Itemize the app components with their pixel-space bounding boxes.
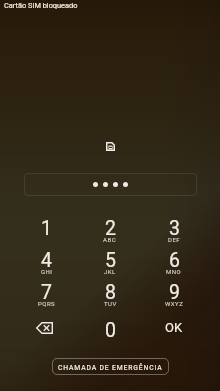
staticText: 5	[105, 249, 116, 272]
button[interactable]: CHAMADA DE EMERGÊNCIA	[52, 358, 169, 375]
staticText: GHI	[41, 268, 53, 275]
button[interactable]: 2	[78, 207, 142, 239]
staticText: 0	[105, 319, 116, 342]
button[interactable]: 4	[15, 239, 78, 271]
other: SIM card	[106, 142, 115, 151]
staticText: 4	[41, 249, 52, 272]
staticText: JKL	[104, 268, 116, 275]
button[interactable]: 8	[78, 271, 142, 303]
button[interactable]: 5	[78, 239, 142, 271]
staticText: MNO	[166, 268, 182, 275]
staticText: 1	[41, 217, 52, 240]
button[interactable]: 0	[78, 303, 142, 341]
button[interactable]: 7	[15, 271, 78, 303]
staticText: 2	[105, 217, 116, 240]
button[interactable]: 3	[142, 207, 206, 239]
button[interactable]: 1	[15, 207, 78, 239]
button[interactable]: 9	[142, 271, 206, 303]
staticText: TUV	[104, 300, 117, 307]
staticText: PQRS	[38, 300, 56, 307]
button[interactable]: 6	[142, 239, 206, 271]
staticText: DEF	[168, 236, 181, 243]
staticText: OK	[165, 320, 183, 335]
staticText: CHAMADA DE EMERGÊNCIA	[58, 364, 163, 372]
staticText: 6	[169, 249, 180, 272]
staticText: Cartão SIM bloqueado	[4, 1, 78, 10]
staticText: ABC	[103, 236, 117, 243]
button[interactable]	[24, 173, 197, 196]
staticText: 7	[41, 281, 52, 304]
staticText: 8	[105, 281, 116, 304]
staticText: WXYZ	[165, 300, 184, 307]
button[interactable]: Backspace	[15, 303, 78, 341]
button[interactable]: OK	[142, 303, 206, 341]
staticText: 3	[169, 217, 180, 240]
staticText: 9	[169, 281, 180, 304]
